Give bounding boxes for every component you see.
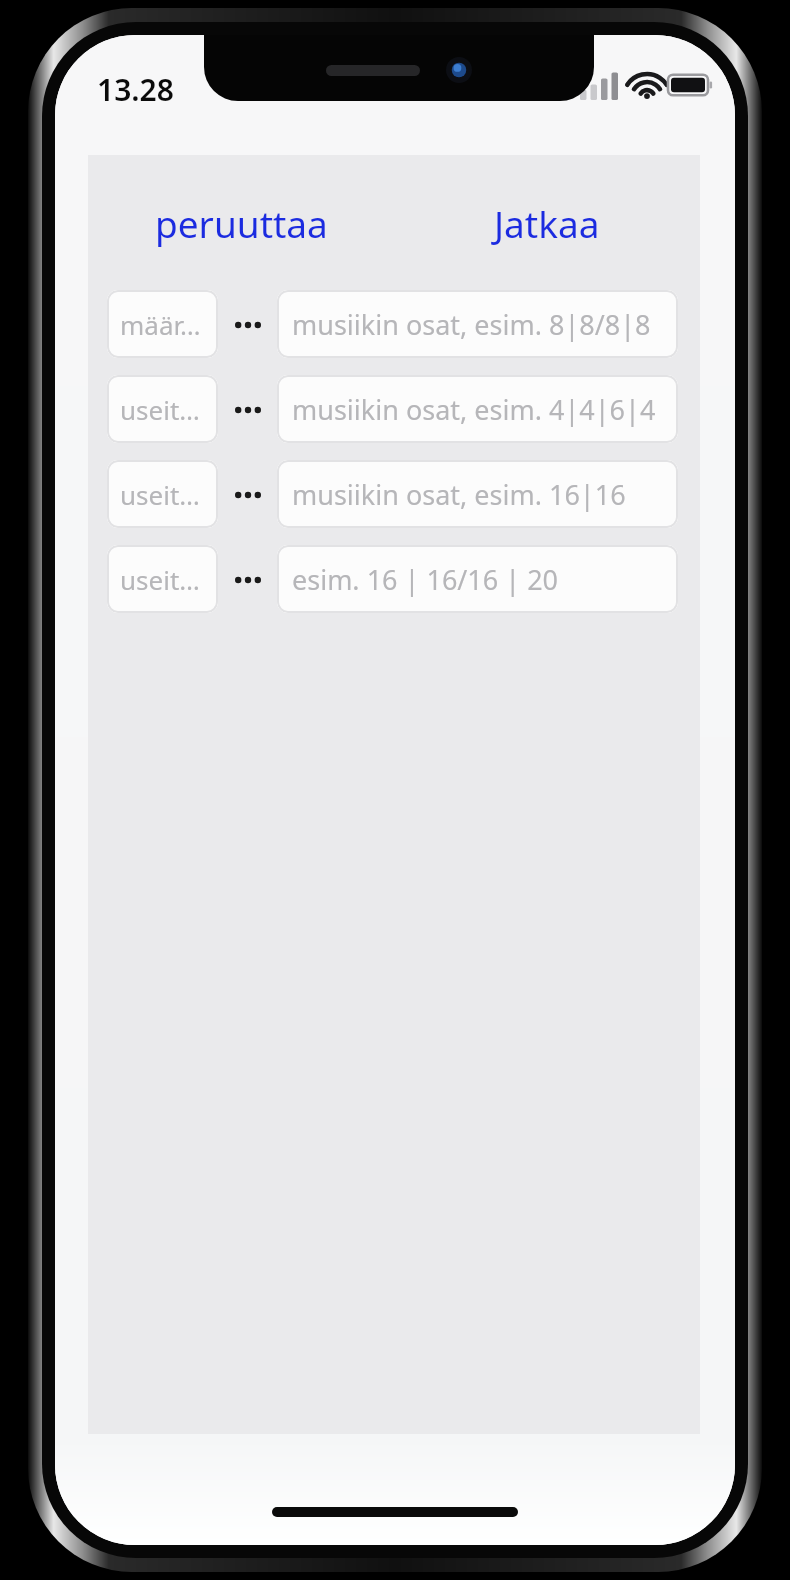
button[interactable]: useit… (107, 375, 218, 443)
staticText: peruuttaa (155, 198, 328, 248)
staticText: esim. 16 | 16/16 | 20 (292, 561, 559, 598)
staticText: useit… (120, 477, 200, 512)
button[interactable]: peruuttaa (88, 155, 394, 290)
button[interactable]: määr… (107, 290, 218, 358)
button[interactable]: musiikin osat, esim. 8|8/8|8 (277, 290, 678, 358)
staticText: Jatkaa (494, 198, 600, 248)
staticText: musiikin osat, esim. 8|8/8|8 (292, 306, 651, 343)
staticText: musiikin osat, esim. 16|16 (292, 476, 626, 513)
button[interactable]: musiikin osat, esim. 4|4|6|4 (277, 375, 678, 443)
staticText: 13.28 (97, 69, 174, 110)
staticText: musiikin osat, esim. 4|4|6|4 (292, 391, 656, 428)
staticText: määr… (120, 307, 201, 342)
button[interactable]: Jatkaa (394, 155, 700, 290)
staticText: useit… (120, 392, 200, 427)
staticText: useit… (120, 562, 200, 597)
button[interactable]: useit… (107, 460, 218, 528)
button[interactable]: musiikin osat, esim. 16|16 (277, 460, 678, 528)
button[interactable]: useit… (107, 545, 218, 613)
button[interactable]: esim. 16 | 16/16 | 20 (277, 545, 678, 613)
